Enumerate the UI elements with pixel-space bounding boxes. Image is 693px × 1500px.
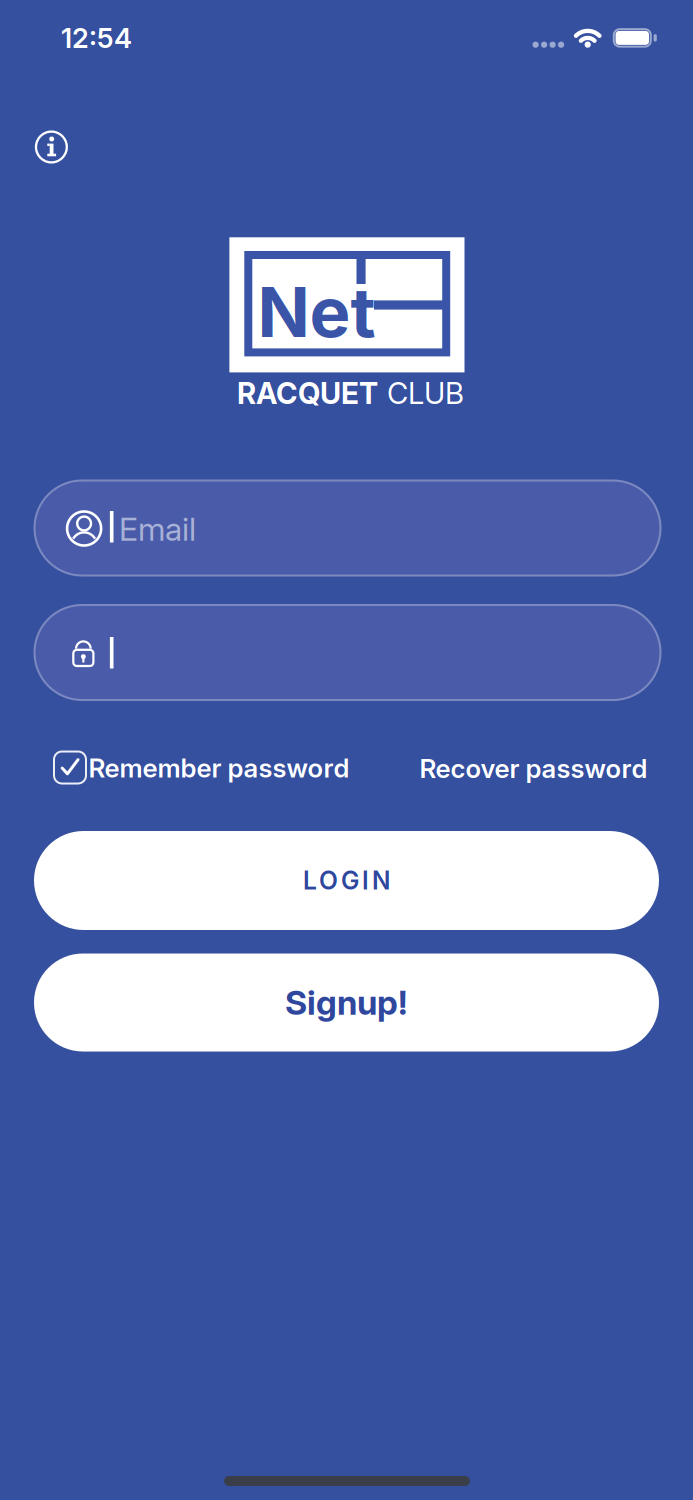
- staticText: RACQUET: [237, 376, 378, 411]
- button[interactable]: Signup!: [34, 953, 659, 1051]
- button[interactable]: Info: [34, 130, 68, 164]
- button[interactable]: Email: [33, 479, 661, 576]
- staticText: Net: [257, 270, 375, 354]
- button[interactable]: Recover password: [420, 753, 648, 784]
- staticText: Signup!: [285, 982, 408, 1023]
- staticText: 12:54: [61, 21, 132, 55]
- button[interactable]: Password: [33, 604, 661, 701]
- staticText: Email: [119, 510, 196, 548]
- staticText: CLUB: [387, 376, 464, 411]
- staticText: Recover password: [420, 753, 648, 784]
- staticText: Remember password: [88, 752, 349, 784]
- button[interactable]: LOGIN: [34, 831, 659, 930]
- staticText: LOGIN: [303, 866, 390, 895]
- button[interactable]: Remember password: [52, 745, 326, 789]
